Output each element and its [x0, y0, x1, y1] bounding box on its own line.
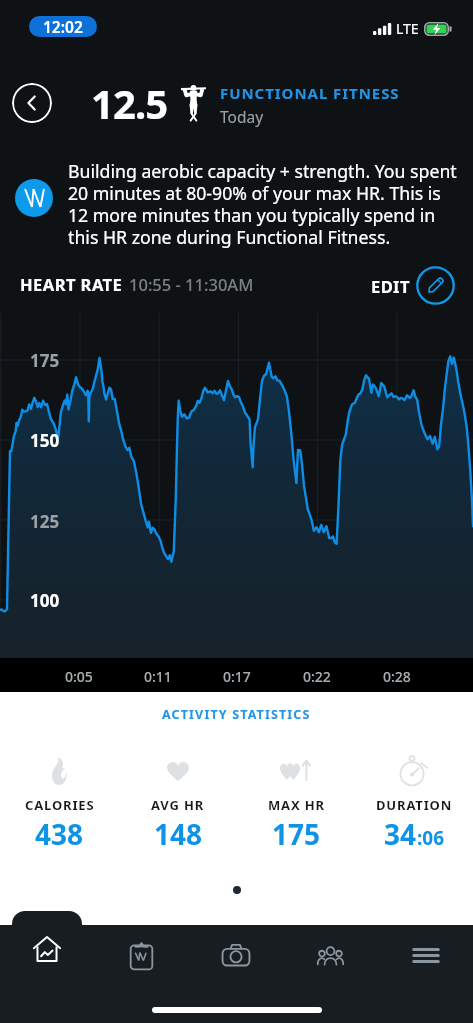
staticText: :06 [417, 825, 445, 851]
button[interactable]: Menu [378, 925, 473, 983]
staticText: 0:17 [223, 667, 251, 686]
staticText: CALORIES [25, 796, 95, 814]
staticText: HEART RATE [20, 273, 123, 295]
staticText: 148 [154, 815, 203, 853]
staticText: 10:55 - 11:30AM [129, 273, 254, 295]
staticText: 0:05 [65, 667, 93, 686]
staticText: 125 [30, 510, 60, 533]
staticText: 34 [384, 815, 417, 853]
button[interactable]: Home [0, 925, 94, 983]
staticText: Today [220, 106, 264, 127]
staticText: 175 [30, 349, 60, 372]
staticText: 12.5 [91, 76, 168, 130]
staticText: FUNCTIONAL FITNESS [220, 83, 400, 103]
staticText: 100 [30, 589, 60, 612]
staticText: 150 [30, 429, 60, 452]
staticText: 12:02 [43, 16, 83, 37]
staticText: ACTIVITY STATISTICS [162, 706, 311, 723]
staticText: 0:11 [144, 667, 172, 686]
button[interactable]: Journal [94, 925, 188, 983]
staticText: LTE [396, 19, 419, 38]
button[interactable]: Back [12, 83, 52, 123]
staticText: DURATION [376, 796, 453, 814]
staticText: MAX HR [268, 796, 325, 814]
staticText: 0:22 [303, 667, 331, 686]
staticText: 438 [35, 815, 84, 853]
staticText: EDIT [371, 275, 410, 297]
staticText: 175 [272, 815, 321, 853]
button[interactable]: EDIT [371, 266, 455, 305]
button[interactable]: Camera [188, 925, 283, 983]
staticText: 0:28 [383, 667, 411, 686]
button[interactable]: Community [283, 925, 378, 983]
staticText: AVG HR [151, 796, 205, 814]
staticText: Building aerobic capacity + strength. Yo… [68, 159, 473, 249]
